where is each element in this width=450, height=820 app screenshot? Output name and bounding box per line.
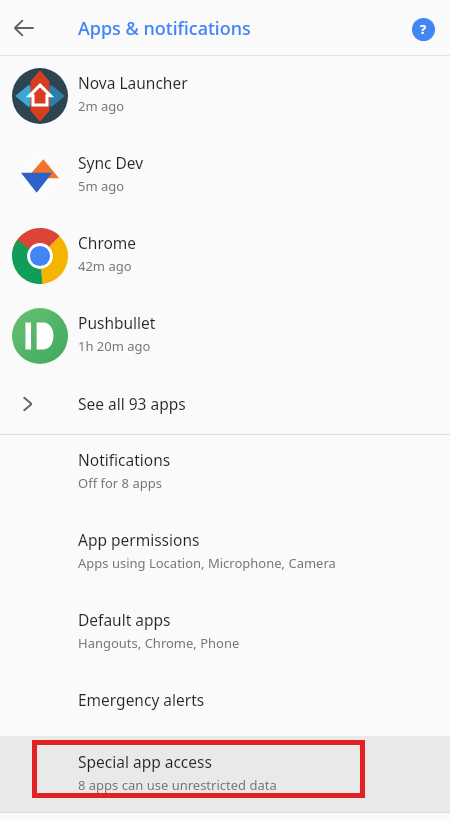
staticText: Sync Dev <box>78 152 144 173</box>
staticText: 1h 20m ago <box>78 337 151 355</box>
staticText: Nova Launcher <box>78 72 188 93</box>
button[interactable]: Default apps <box>0 595 450 675</box>
staticText: Apps using Location, Microphone, Camera <box>78 554 336 572</box>
button[interactable]: Back <box>8 12 40 44</box>
button[interactable]: Help <box>406 12 440 46</box>
staticText: Off for 8 apps <box>78 474 162 492</box>
staticText: Default apps <box>78 609 171 630</box>
staticText: 5m ago <box>78 177 125 195</box>
staticText: Notifications <box>78 449 171 470</box>
staticText: Pushbullet <box>78 312 156 333</box>
button[interactable]: See all 93 apps <box>0 376 450 434</box>
staticText: App permissions <box>78 529 200 550</box>
button[interactable]: Chrome <box>0 216 450 296</box>
button[interactable]: Special app access <box>0 736 450 806</box>
staticText: Chrome <box>78 232 137 253</box>
staticText: Apps & notifications <box>78 16 251 41</box>
button[interactable]: Emergency alerts <box>0 675 450 736</box>
button[interactable]: Nova Launcher <box>0 56 450 136</box>
staticText: ? <box>420 20 427 38</box>
staticText: 2m ago <box>78 97 125 115</box>
button[interactable]: Pushbullet <box>0 296 450 376</box>
staticText: Emergency alerts <box>78 689 205 710</box>
staticText: 42m ago <box>78 257 132 275</box>
button[interactable]: Sync Dev <box>0 136 450 216</box>
staticText: Special app access <box>78 751 212 772</box>
staticText: See all 93 apps <box>78 393 186 414</box>
staticText: Hangouts, Chrome, Phone <box>78 634 240 652</box>
button[interactable]: App permissions <box>0 515 450 595</box>
button[interactable]: Notifications <box>0 435 450 515</box>
staticText: 8 apps can use unrestricted data <box>78 776 277 794</box>
